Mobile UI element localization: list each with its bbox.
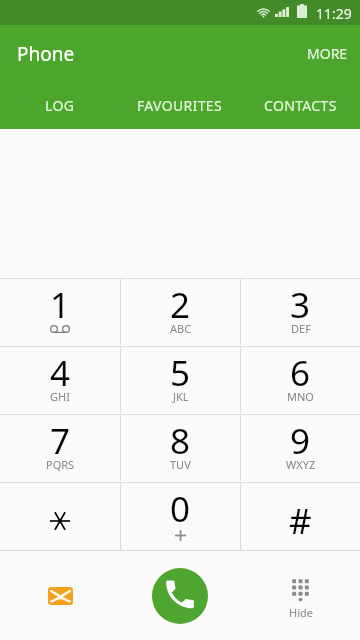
staticText: FAVOURITES (137, 96, 223, 115)
button[interactable]: LOG (0, 77, 120, 129)
button[interactable]: Call (152, 568, 208, 624)
staticText: 0 (170, 485, 191, 533)
button[interactable]: 2 (121, 279, 240, 345)
button[interactable]: 6 (241, 347, 360, 413)
staticText: MORE (307, 44, 348, 63)
staticText: 9 (290, 417, 311, 465)
staticText: 6 (290, 349, 311, 397)
staticText: 8 (170, 417, 191, 465)
button[interactable]: 1 (0, 279, 120, 345)
button[interactable]: 4 (0, 347, 120, 413)
staticText: JKL (173, 389, 189, 404)
staticText: 1 (50, 281, 71, 329)
button[interactable]: 8 (121, 415, 240, 481)
staticText: # (289, 497, 312, 545)
button[interactable]: CONTACTS (240, 77, 360, 129)
staticText: 2 (170, 281, 191, 329)
staticText: PQRS (46, 457, 75, 472)
button[interactable] (0, 483, 120, 550)
staticText: 5 (170, 349, 191, 397)
staticText: DEF (291, 321, 311, 336)
staticText: Phone (17, 41, 75, 67)
button[interactable]: Message (36, 572, 84, 620)
button[interactable]: 3 (241, 279, 360, 345)
button[interactable]: 9 (241, 415, 360, 481)
staticText: 4 (50, 349, 71, 397)
button[interactable]: 0 (121, 483, 240, 550)
staticText: MNO (287, 389, 314, 404)
staticText: 7 (50, 417, 71, 465)
staticText: 11:29 (316, 4, 352, 23)
staticText: TUV (170, 457, 191, 472)
button[interactable]: 7 (0, 415, 120, 481)
button[interactable]: Hide keypad (276, 571, 324, 619)
staticText: ABC (170, 321, 192, 336)
button[interactable]: # (241, 483, 360, 550)
button[interactable]: 5 (121, 347, 240, 413)
staticText: Hide (289, 605, 313, 620)
button[interactable]: MORE (295, 32, 360, 71)
button[interactable]: FAVOURITES (120, 77, 240, 129)
staticText: LOG (45, 96, 75, 115)
staticText: CONTACTS (264, 96, 337, 115)
staticText: 3 (290, 281, 311, 329)
staticText: GHI (50, 389, 70, 404)
staticText: WXYZ (286, 457, 316, 472)
